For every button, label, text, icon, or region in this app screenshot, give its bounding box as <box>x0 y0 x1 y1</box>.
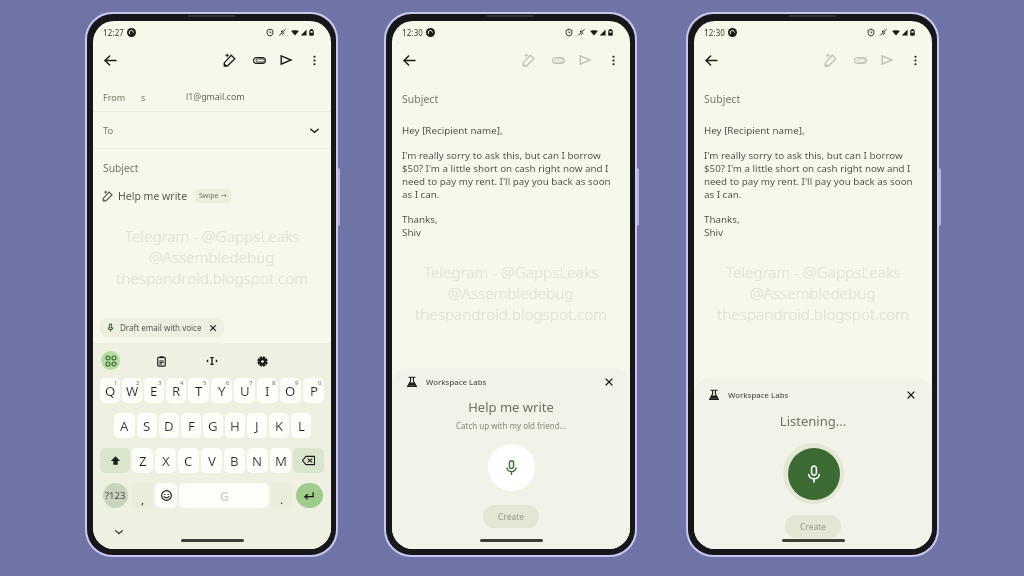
button[interactable]: T <box>188 378 209 403</box>
button[interactable]: J <box>247 413 267 438</box>
staticText: Q <box>105 382 116 400</box>
button[interactable]: Help me write <box>818 48 844 72</box>
button[interactable]: Z <box>132 448 153 473</box>
button[interactable]: Y <box>211 378 232 403</box>
staticText: D <box>164 417 174 435</box>
button[interactable]: Emoji <box>155 483 177 508</box>
button[interactable]: Keyboard settings <box>252 351 272 371</box>
staticText: G <box>208 417 218 435</box>
button[interactable]: G <box>203 413 223 438</box>
button[interactable]: Create <box>483 505 539 528</box>
staticText: Hey [Recipient name], <box>704 124 805 137</box>
button[interactable]: Enter <box>294 483 324 508</box>
button[interactable]: Back <box>698 48 724 72</box>
staticText: C <box>184 452 193 470</box>
staticText: Hey [Recipient name], <box>402 124 503 137</box>
staticText: Workspace Labs <box>728 390 789 401</box>
staticText: Help me write <box>118 189 188 203</box>
button[interactable]: , <box>132 483 153 508</box>
staticText: Subject <box>103 161 139 175</box>
button[interactable]: Clipboard <box>151 351 171 371</box>
button[interactable]: Help me write <box>103 186 231 206</box>
button[interactable]: E <box>144 378 164 403</box>
staticText: L <box>298 417 305 435</box>
button[interactable]: More options <box>301 48 327 72</box>
button[interactable]: More options <box>600 48 626 72</box>
button[interactable]: A <box>114 413 135 438</box>
staticText: I <box>265 382 270 400</box>
staticText: X <box>162 452 170 470</box>
button[interactable]: Send <box>572 48 598 72</box>
button[interactable]: S <box>137 413 157 438</box>
staticText: 8 <box>272 379 276 387</box>
button[interactable]: Close <box>902 386 920 404</box>
button[interactable]: V <box>201 448 222 473</box>
button[interactable]: Send <box>273 48 299 72</box>
button[interactable]: L <box>291 413 311 438</box>
button[interactable]: Send <box>874 48 900 72</box>
staticText: Listening... <box>694 412 932 430</box>
staticText: 2 <box>136 379 140 387</box>
button[interactable]: O <box>280 378 301 403</box>
button[interactable]: Stop listening <box>788 448 840 500</box>
button[interactable]: B <box>224 448 245 473</box>
button[interactable]: Shift <box>100 448 130 473</box>
button[interactable]: Attach file <box>545 48 571 72</box>
staticText: N <box>252 452 263 470</box>
button[interactable]: . <box>271 483 292 508</box>
staticText: Y <box>218 382 226 400</box>
button[interactable]: Back <box>396 48 422 72</box>
button[interactable]: Q <box>100 378 120 403</box>
staticText: , <box>141 491 145 507</box>
button[interactable]: C <box>178 448 199 473</box>
staticText: 4 <box>180 379 184 387</box>
button[interactable]: W <box>122 378 142 403</box>
button[interactable]: Attach file <box>246 48 272 72</box>
staticText: l1@gmail.com <box>186 91 245 103</box>
button[interactable]: K <box>269 413 289 438</box>
staticText: Shiv <box>704 226 723 239</box>
button[interactable]: Backspace <box>293 448 324 473</box>
button[interactable]: P <box>303 378 324 403</box>
staticText: A <box>120 417 129 435</box>
button[interactable]: Help me write <box>217 48 243 72</box>
staticText: Workspace Labs <box>426 377 487 388</box>
button[interactable]: H <box>225 413 245 438</box>
button[interactable]: X <box>155 448 176 473</box>
staticText: 9 <box>295 379 299 387</box>
button[interactable]: More options <box>902 48 928 72</box>
button[interactable]: Help me write <box>516 48 542 72</box>
staticText: Shiv <box>402 226 421 239</box>
button[interactable]: Text editing <box>202 351 222 371</box>
staticText: P <box>310 382 318 400</box>
staticText: Catch up with my old friend... <box>392 420 630 431</box>
staticText: 0 <box>318 379 322 387</box>
button[interactable]: Keyboard apps <box>101 351 120 370</box>
button[interactable]: U <box>234 378 255 403</box>
button[interactable]: D <box>159 413 179 438</box>
button[interactable]: To <box>103 112 320 148</box>
button[interactable]: I <box>257 378 278 403</box>
staticText: Telegram - @GappsLeaks <box>424 262 599 283</box>
button[interactable]: Hide keyboard <box>111 524 127 540</box>
button[interactable]: Back <box>97 48 123 72</box>
button[interactable]: R <box>166 378 186 403</box>
button[interactable]: N <box>247 448 268 473</box>
button[interactable]: ?123 <box>100 483 130 508</box>
button[interactable]: Start voice input <box>488 444 535 491</box>
staticText: Thanks, <box>402 213 438 226</box>
button[interactable]: G <box>179 483 269 508</box>
button[interactable]: Create <box>785 515 841 538</box>
button[interactable]: Close <box>600 373 618 391</box>
staticText: Help me write <box>392 398 630 416</box>
staticText: Create <box>800 521 827 533</box>
staticText: To <box>103 124 114 137</box>
button[interactable]: Attach file <box>847 48 873 72</box>
button[interactable]: M <box>270 448 291 473</box>
staticText: M <box>275 452 287 470</box>
staticText: I'm really sorry to ask this, but can I … <box>402 149 622 201</box>
button[interactable]: Draft email with voice <box>100 318 224 337</box>
button[interactable]: F <box>181 413 201 438</box>
staticText: W <box>126 382 139 400</box>
staticText: Subject <box>704 92 741 106</box>
